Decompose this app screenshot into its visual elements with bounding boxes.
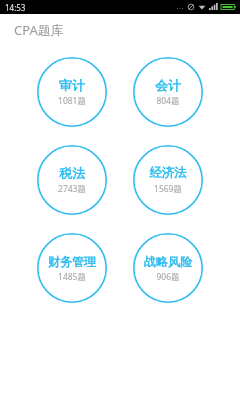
staticText: 战略风险 [144, 254, 192, 269]
button[interactable]: 会计 [133, 57, 203, 127]
button[interactable]: 税法 [37, 145, 107, 215]
staticText: 2743题 [58, 183, 86, 195]
staticText: 804题 [156, 95, 180, 107]
staticText: 税法 [59, 165, 85, 181]
button[interactable]: 审计 [37, 57, 107, 127]
staticText: 1081题 [58, 95, 86, 107]
staticText: 14:53 [5, 2, 26, 13]
staticText: 会计 [155, 77, 181, 93]
staticText: 审计 [59, 77, 85, 93]
staticText: 财务管理 [48, 254, 96, 269]
staticText: CPA题库 [14, 21, 64, 39]
staticText: 906题 [156, 271, 180, 283]
button[interactable]: 战略风险 [133, 233, 203, 303]
button[interactable]: 财务管理 [37, 233, 107, 303]
staticText: 1569题 [154, 183, 182, 195]
staticText: 1485题 [58, 271, 86, 283]
button[interactable]: 经济法 [133, 145, 203, 215]
staticText: 经济法 [149, 165, 187, 181]
